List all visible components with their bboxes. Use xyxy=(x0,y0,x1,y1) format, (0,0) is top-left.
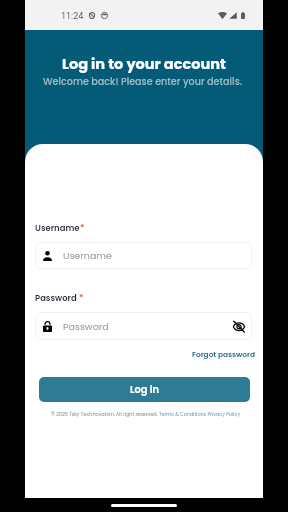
staticText: Forgot password xyxy=(192,349,255,359)
staticText: Log in to your account xyxy=(62,54,226,74)
staticText: Password xyxy=(35,292,79,304)
staticText: Username xyxy=(35,222,80,234)
staticText: * xyxy=(80,222,85,234)
staticText: Username xyxy=(63,249,112,262)
staticText: 11:24 xyxy=(61,11,84,22)
staticText: Password xyxy=(63,320,109,333)
button[interactable]: Log in xyxy=(39,377,250,402)
staticText: © 2025 7sky Technovation. All right rese… xyxy=(51,411,241,418)
button[interactable]: Show password xyxy=(230,317,248,335)
staticText: Welcome back! Please enter your details. xyxy=(43,75,243,88)
button[interactable]: Username xyxy=(35,242,252,269)
button[interactable]: Forgot password xyxy=(192,349,255,359)
staticText: * xyxy=(79,292,84,304)
staticText: Log in xyxy=(130,383,159,397)
button[interactable]: Password xyxy=(35,312,252,340)
